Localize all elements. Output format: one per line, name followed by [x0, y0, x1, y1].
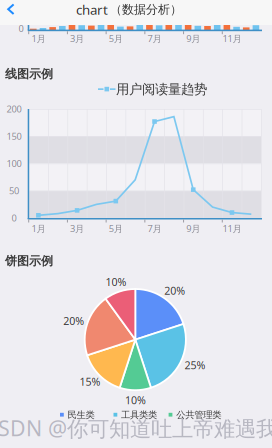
staticText: 1月 — [31, 222, 45, 235]
staticText: 15% — [79, 374, 100, 389]
staticText: 9月 — [186, 32, 200, 45]
staticText: 线图示例 — [5, 67, 53, 81]
staticText: 11月 — [222, 32, 241, 45]
staticText: 5月 — [109, 222, 123, 235]
staticText: 3月 — [70, 32, 84, 45]
staticText: 民生类 — [68, 409, 95, 421]
staticText: 10% — [125, 393, 146, 407]
staticText: 3月 — [70, 222, 84, 235]
staticText: 9月 — [186, 222, 200, 235]
staticText: 7月 — [147, 32, 161, 45]
staticText: 25% — [184, 358, 205, 372]
staticText: 200 — [6, 103, 21, 115]
staticText: 50 — [9, 185, 19, 197]
staticText: 工具类类 — [121, 409, 157, 421]
staticText: 100 — [6, 157, 21, 170]
staticText: 5月 — [109, 32, 123, 45]
button[interactable]: Back — [0, 0, 28, 20]
staticText: chart — [76, 1, 108, 18]
staticText: 用户阅读量趋势 — [116, 81, 207, 97]
staticText: 10% — [105, 275, 126, 289]
staticText: 11月 — [222, 222, 241, 235]
staticText: 20% — [164, 283, 185, 298]
staticText: 饼图示例 — [5, 254, 53, 268]
staticText: 150 — [6, 130, 21, 142]
staticText: 20% — [63, 314, 84, 328]
staticText: 0 — [11, 212, 16, 224]
staticText: SDN @你可知道吐上帝难遇我 — [0, 414, 272, 442]
staticText: （数据分析） — [110, 2, 182, 17]
staticText: 7月 — [147, 222, 161, 235]
staticText: 1月 — [31, 32, 45, 45]
staticText: 公共管理类 — [176, 409, 221, 421]
staticText: 0 — [18, 22, 23, 35]
